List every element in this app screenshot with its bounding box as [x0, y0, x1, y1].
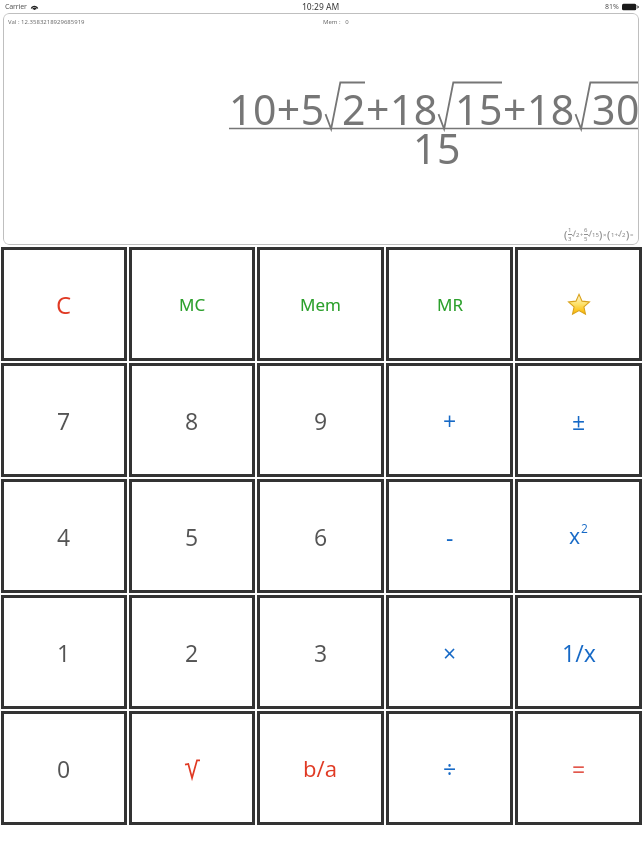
staticText: 2 — [581, 520, 588, 536]
button[interactable]: x squared — [515, 479, 642, 593]
button[interactable]: 1/x — [515, 595, 642, 709]
staticText: 2 — [622, 231, 626, 239]
button[interactable]: 2 — [129, 595, 255, 709]
staticText: - — [446, 521, 454, 552]
button[interactable]: 8 — [129, 363, 255, 477]
staticText: 81% — [605, 2, 619, 12]
staticText: 30 — [592, 81, 639, 137]
staticText: ( — [564, 227, 568, 242]
button[interactable]: C — [1, 247, 127, 361]
staticText: 10:29 AM — [302, 1, 340, 13]
staticText: 5 — [185, 521, 199, 552]
staticText: 6 — [314, 521, 328, 552]
staticText: ( — [607, 227, 611, 242]
staticText: = — [630, 231, 634, 239]
staticText: + — [580, 231, 584, 239]
staticText: × — [603, 231, 607, 239]
staticText: 4 — [57, 521, 71, 552]
staticText: ) — [626, 227, 630, 242]
button[interactable]: Square root — [129, 711, 255, 825]
staticText: 2 — [342, 81, 366, 137]
button[interactable]: MR — [386, 247, 513, 361]
staticText: = — [572, 753, 586, 784]
staticText: 5 — [584, 235, 588, 243]
staticText: 8 — [185, 405, 199, 436]
staticText: 6 — [584, 226, 588, 234]
staticText: 15 — [592, 231, 599, 239]
button[interactable]: ÷ — [386, 711, 513, 825]
button[interactable]: 5 — [129, 479, 255, 593]
button[interactable]: 6 — [257, 479, 384, 593]
staticText: +18 — [503, 81, 575, 137]
button[interactable]: 4 — [1, 479, 127, 593]
staticText: +18 — [366, 81, 438, 137]
staticText: 1 — [568, 226, 572, 234]
staticText: C — [56, 288, 72, 321]
staticText: 1/x — [562, 637, 596, 668]
staticText: Val : 12.3583218929685919 — [8, 18, 85, 26]
staticText: 7 — [57, 405, 71, 436]
staticText: 10+5 — [229, 81, 325, 137]
staticText: 1+ — [611, 231, 618, 239]
staticText: 1 — [57, 637, 71, 668]
staticText: MC — [179, 293, 206, 316]
staticText: ) — [599, 227, 603, 242]
staticText: 0 — [57, 753, 71, 784]
staticText: 15 — [413, 120, 461, 176]
staticText: ± — [572, 405, 586, 436]
staticText: Mem — [300, 293, 341, 316]
button[interactable]: = — [515, 711, 642, 825]
button[interactable]: + — [386, 363, 513, 477]
button[interactable]: b/a — [257, 711, 384, 825]
button[interactable]: Expression display — [3, 13, 639, 245]
button[interactable]: - — [386, 479, 513, 593]
staticText: 9 — [314, 405, 328, 436]
staticText: 3 — [568, 235, 572, 243]
staticText: Mem : 0 — [323, 18, 349, 26]
button[interactable]: Mem — [257, 247, 384, 361]
button[interactable]: MC — [129, 247, 255, 361]
staticText: 15 — [455, 81, 503, 137]
button[interactable]: × — [386, 595, 513, 709]
staticText: 2 — [576, 231, 580, 239]
button[interactable]: 3 — [257, 595, 384, 709]
button[interactable]: Favourite — [515, 247, 642, 361]
staticText: × — [443, 637, 457, 668]
button[interactable]: 1 — [1, 595, 127, 709]
staticText: ÷ — [443, 753, 457, 784]
button[interactable]: 0 — [1, 711, 127, 825]
staticText: 3 — [314, 637, 328, 668]
button[interactable]: 9 — [257, 363, 384, 477]
button[interactable]: 7 — [1, 363, 127, 477]
staticText: Carrier — [5, 2, 27, 12]
staticText: + — [443, 405, 457, 436]
staticText: b/a — [303, 753, 338, 783]
button[interactable]: ± — [515, 363, 642, 477]
staticText: MR — [437, 293, 463, 316]
staticText: 2 — [185, 637, 199, 668]
staticText: x — [569, 522, 581, 551]
